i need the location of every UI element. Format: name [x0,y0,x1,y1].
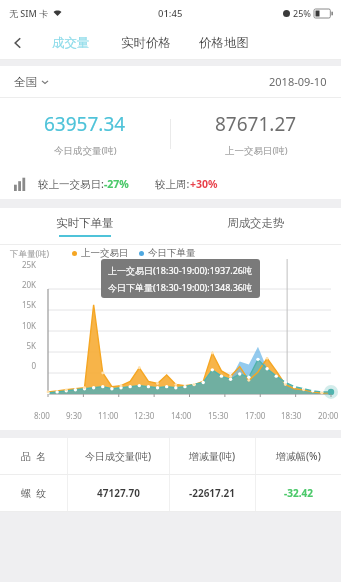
staticText: 全国 [14,75,37,89]
staticText: 17:00 [245,410,266,421]
staticText: 01:45 [158,7,183,20]
staticText: 今日成交量(吨) [54,144,117,157]
staticText: 实时下单量 [56,216,114,230]
staticText: 价格地图 [199,35,249,51]
staticText: 较上周: [155,177,190,191]
staticText: 5K [10,340,36,351]
staticText: 上一交易日(18:30-19:00):1937.26吨 [108,264,253,276]
staticText: -32.42 [284,486,313,500]
staticText: 今日成交量(吨) [85,449,152,463]
button[interactable]: 价格地图 [197,29,251,57]
staticText: 9:30 [66,410,82,421]
staticText: 14:00 [171,410,192,421]
button[interactable]: 实时下单量 [0,208,170,244]
staticText: 18:30 [281,410,302,421]
staticText: 10K [10,320,36,331]
staticText: 12:30 [134,410,155,421]
button[interactable]: 周成交走势 [170,208,341,244]
staticText: 上一交易日 [81,247,129,259]
staticText: 实时价格 [121,35,171,51]
staticText: +30% [190,177,218,191]
button[interactable]: 实时价格 [119,29,173,57]
staticText: 20K [10,279,36,290]
staticText: 11:00 [98,410,119,421]
staticText: 无 SIM 卡 [9,7,49,19]
staticText: 63957.34 [44,111,126,137]
staticText: 8:00 [34,410,50,421]
staticText: -27% [104,177,129,191]
staticText: 螺 纹 [21,486,47,500]
button[interactable]: 成交量 [50,29,92,57]
button[interactable]: 全国 [14,75,49,89]
staticText: 下单量(吨) [10,248,50,260]
staticText: 15K [10,299,36,310]
staticText: 增减量(吨) [189,449,236,463]
staticText: 0 [10,360,36,371]
staticText: 20:00 [318,410,339,421]
staticText: 15:30 [208,410,229,421]
staticText: 周成交走势 [227,216,285,230]
button[interactable]: Back [0,26,36,60]
staticText: 品 名 [21,449,47,463]
staticText: 增减幅(%) [276,449,321,463]
staticText: 今日下单量(18:30-19:00):1348.36吨 [108,281,253,293]
button[interactable]: 螺 纹 [0,475,341,511]
staticText: -22617.21 [189,486,236,500]
staticText: 47127.70 [97,486,140,500]
staticText: 25K [10,259,36,270]
staticText: 25% [293,7,311,19]
staticText: 上一交易日(吨) [225,144,288,157]
staticText: 87671.27 [215,111,297,137]
staticText: 2018-09-10 [269,74,327,89]
staticText: 今日下单量 [148,247,196,259]
staticText: 成交量 [52,35,90,51]
staticText: 较上一交易日: [38,177,104,191]
